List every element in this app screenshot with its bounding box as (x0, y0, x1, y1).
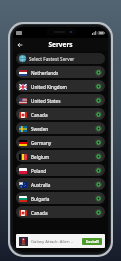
staticText: Germany (31, 140, 52, 146)
staticText: United Kingdom (31, 84, 67, 90)
button[interactable]: Netherlands (16, 66, 105, 78)
button[interactable]: Australia (16, 178, 105, 190)
button[interactable]: United Kingdom (16, 80, 105, 92)
button[interactable]: Bulgaria (16, 192, 105, 204)
staticText: Canada (31, 210, 48, 216)
button[interactable]: Belgium (16, 150, 105, 162)
button[interactable]: Canada (16, 108, 105, 120)
button[interactable]: Select Fastest Server (16, 53, 105, 64)
button[interactable]: Sweden (16, 122, 105, 134)
staticText: Select Fastest Server (29, 56, 75, 62)
button[interactable]: Canada (16, 206, 105, 218)
staticText: Canada (31, 112, 48, 118)
button[interactable]: Install (82, 238, 102, 245)
button[interactable]: United States (16, 94, 105, 106)
staticText: Galaxy Attack: Alien .. (31, 239, 73, 245)
button[interactable]: Back (13, 38, 26, 51)
button[interactable]: Poland (16, 164, 105, 176)
staticText: Poland (31, 168, 47, 174)
button[interactable]: Galaxy Attack: Alien .. (16, 234, 105, 248)
staticText: Australia (31, 182, 51, 188)
staticText: Sweden (31, 126, 49, 132)
staticText: Belgium (31, 154, 50, 160)
staticText: Bulgaria (31, 196, 50, 202)
staticText: Servers (48, 40, 73, 49)
staticText: Netherlands (31, 70, 59, 76)
staticText: Install (86, 239, 99, 244)
staticText: United States (31, 98, 61, 104)
button[interactable]: Germany (16, 136, 105, 148)
